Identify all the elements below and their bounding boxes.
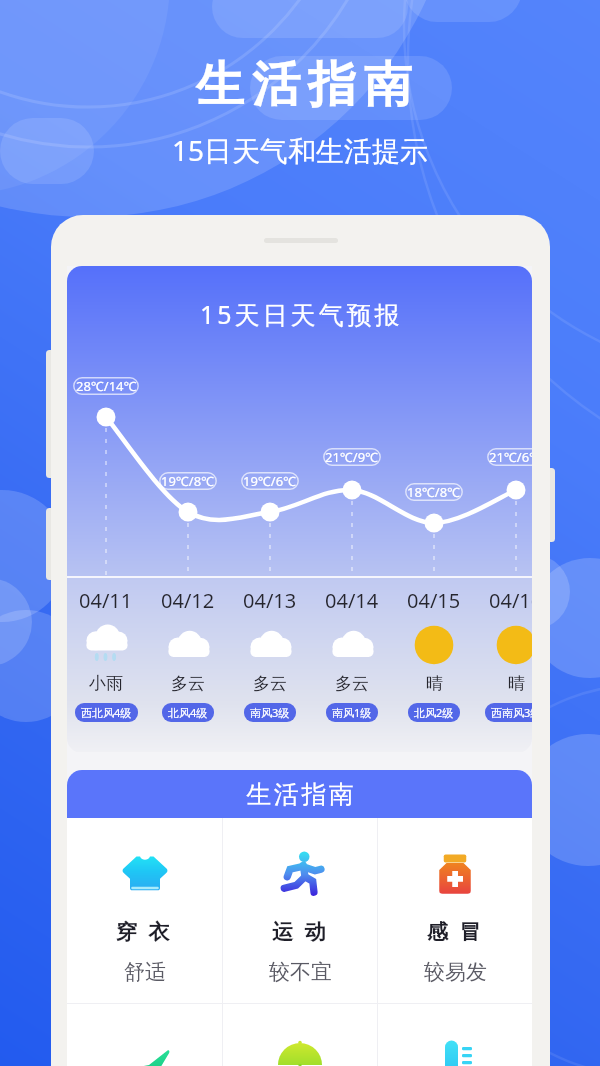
staticText: 04/14	[325, 587, 379, 614]
staticText: 运 动	[272, 917, 329, 946]
button[interactable]: 04/12	[147, 587, 229, 722]
button[interactable]: 洗 车	[67, 1004, 222, 1066]
staticText: 21℃/6℃	[489, 448, 532, 466]
staticText: 西北风4级	[81, 705, 132, 720]
staticText: 小雨	[89, 673, 123, 694]
staticText: 多云	[171, 673, 205, 694]
button[interactable]: 紫外线	[223, 1004, 377, 1066]
staticText: 晴	[426, 673, 443, 694]
button[interactable]: 04/15	[393, 587, 475, 722]
staticText: 15日天气和生活提示	[172, 131, 429, 169]
button[interactable]: 04/11	[67, 587, 147, 722]
staticText: 04/13	[243, 587, 297, 614]
staticText: 较不宜	[269, 959, 332, 985]
staticText: 18℃/8℃	[407, 483, 461, 501]
button[interactable]: 舒适度	[378, 1004, 532, 1066]
button[interactable]: 04/16	[475, 587, 532, 722]
staticText: 生活指南	[192, 55, 416, 115]
staticText: 04/16	[489, 587, 532, 614]
staticText: 19℃/6℃	[243, 472, 297, 490]
staticText: 15天日天气预报	[200, 297, 403, 331]
staticText: 穿 衣	[116, 917, 173, 946]
staticText: 19℃/8℃	[161, 472, 215, 490]
staticText: 舒适	[124, 959, 166, 985]
button[interactable]: 感 冒	[378, 818, 532, 1003]
button[interactable]: 生活指南	[67, 770, 532, 818]
staticText: 多云	[253, 673, 287, 694]
staticText: 南风3级	[250, 705, 290, 720]
staticText: 21℃/9℃	[325, 448, 379, 466]
staticText: 04/11	[79, 587, 133, 614]
staticText: 较易发	[424, 959, 487, 985]
staticText: 感 冒	[427, 917, 484, 946]
staticText: 西南风3级	[491, 705, 532, 720]
staticText: 生活指南	[245, 779, 355, 810]
button[interactable]: 运 动	[223, 818, 377, 1003]
staticText: 北风2级	[414, 705, 454, 720]
button[interactable]: 04/14	[311, 587, 393, 722]
button[interactable]: 04/13	[229, 587, 311, 722]
staticText: 晴	[508, 673, 525, 694]
staticText: 04/15	[407, 587, 461, 614]
staticText: 28℃/14℃	[76, 377, 137, 395]
staticText: 北风4级	[168, 705, 208, 720]
staticText: 南风1级	[332, 705, 372, 720]
staticText: 04/12	[161, 587, 215, 614]
button[interactable]: 穿 衣	[67, 818, 222, 1003]
staticText: 多云	[335, 673, 369, 694]
